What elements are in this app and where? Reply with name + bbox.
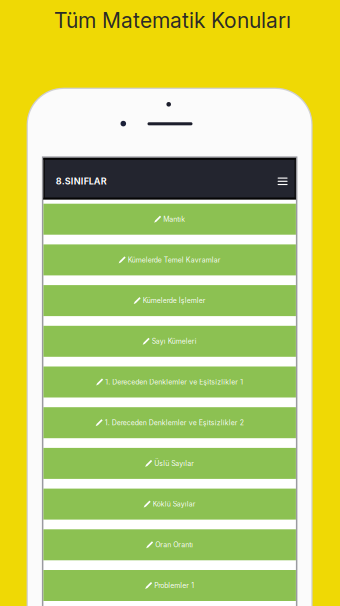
button[interactable]: Kümelerde İşlemler xyxy=(43,285,296,316)
button[interactable]: Oran Orantı xyxy=(43,529,296,560)
staticText: Üslü Sayılar xyxy=(154,459,194,468)
button[interactable]: Kümelerde Temel Kavramlar xyxy=(43,244,296,275)
staticText: 8.SINIFLAR xyxy=(56,176,107,187)
button[interactable]: 1. Dereceden Denklemler ve Eşitsizlikler… xyxy=(43,407,296,438)
button[interactable]: Üslü Sayılar xyxy=(43,448,296,479)
staticText: 1. Dereceden Denklemler ve Eşitsizlikler… xyxy=(105,418,244,427)
staticText: Tüm Matematik Konuları xyxy=(54,8,291,33)
button[interactable]: Sayı Kümeleri xyxy=(43,326,296,357)
button[interactable]: Mantık xyxy=(43,204,296,235)
staticText: Sayı Kümeleri xyxy=(152,337,197,345)
staticText: Kümelerde İşlemler xyxy=(143,296,206,305)
staticText: Köklü Sayılar xyxy=(153,500,196,508)
staticText: Kümelerde Temel Kavramlar xyxy=(128,256,221,264)
button[interactable]: Menu xyxy=(276,174,290,188)
button[interactable]: 1. Dereceden Denklemler ve Eşitsizlikler… xyxy=(43,366,296,397)
staticText: Problemler 1 xyxy=(154,581,194,590)
button[interactable]: Köklü Sayılar xyxy=(43,489,296,520)
button[interactable]: Problemler 1 xyxy=(43,570,296,601)
staticText: Mantık xyxy=(163,215,185,223)
staticText: Oran Orantı xyxy=(155,541,193,549)
staticText: 1. Dereceden Denklemler ve Eşitsizlikler… xyxy=(105,378,243,386)
